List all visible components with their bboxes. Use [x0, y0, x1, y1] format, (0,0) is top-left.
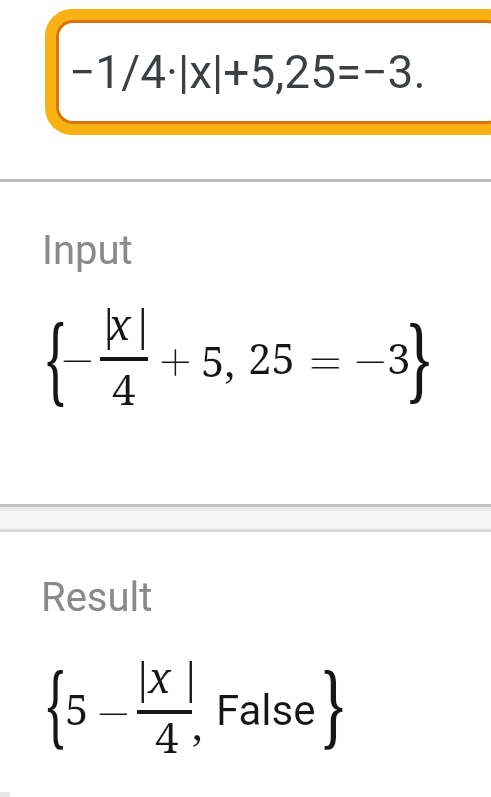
staticText: 25: [248, 329, 295, 386]
staticText: False: [216, 686, 316, 735]
button[interactable]: −1/4·|x|+5,25=−3.: [45, 9, 491, 135]
staticText: +: [159, 326, 192, 386]
staticText: 3: [387, 329, 411, 386]
staticText: |: [131, 648, 155, 705]
staticText: }: [407, 296, 432, 420]
staticText: x: [148, 648, 171, 705]
staticText: |: [97, 295, 121, 352]
staticText: 4: [155, 708, 179, 765]
staticText: |: [131, 295, 155, 352]
staticText: 4: [112, 360, 136, 417]
button[interactable]: [0, 532, 491, 797]
staticText: Result: [41, 574, 153, 621]
staticText: −: [61, 325, 94, 385]
staticText: 5,: [201, 332, 235, 389]
staticText: ,: [192, 695, 203, 752]
staticText: x: [108, 295, 131, 352]
staticText: −: [354, 326, 387, 386]
staticText: Input: [42, 227, 133, 274]
staticText: −: [97, 678, 130, 738]
staticText: =: [309, 327, 342, 387]
button[interactable]: [0, 182, 491, 504]
staticText: }: [322, 642, 345, 764]
staticText: {: [45, 292, 66, 421]
staticText: 5: [65, 680, 89, 737]
staticText: −1/4·|x|+5,25=−3.: [69, 45, 426, 99]
staticText: {: [45, 642, 65, 764]
staticText: |: [179, 648, 203, 705]
